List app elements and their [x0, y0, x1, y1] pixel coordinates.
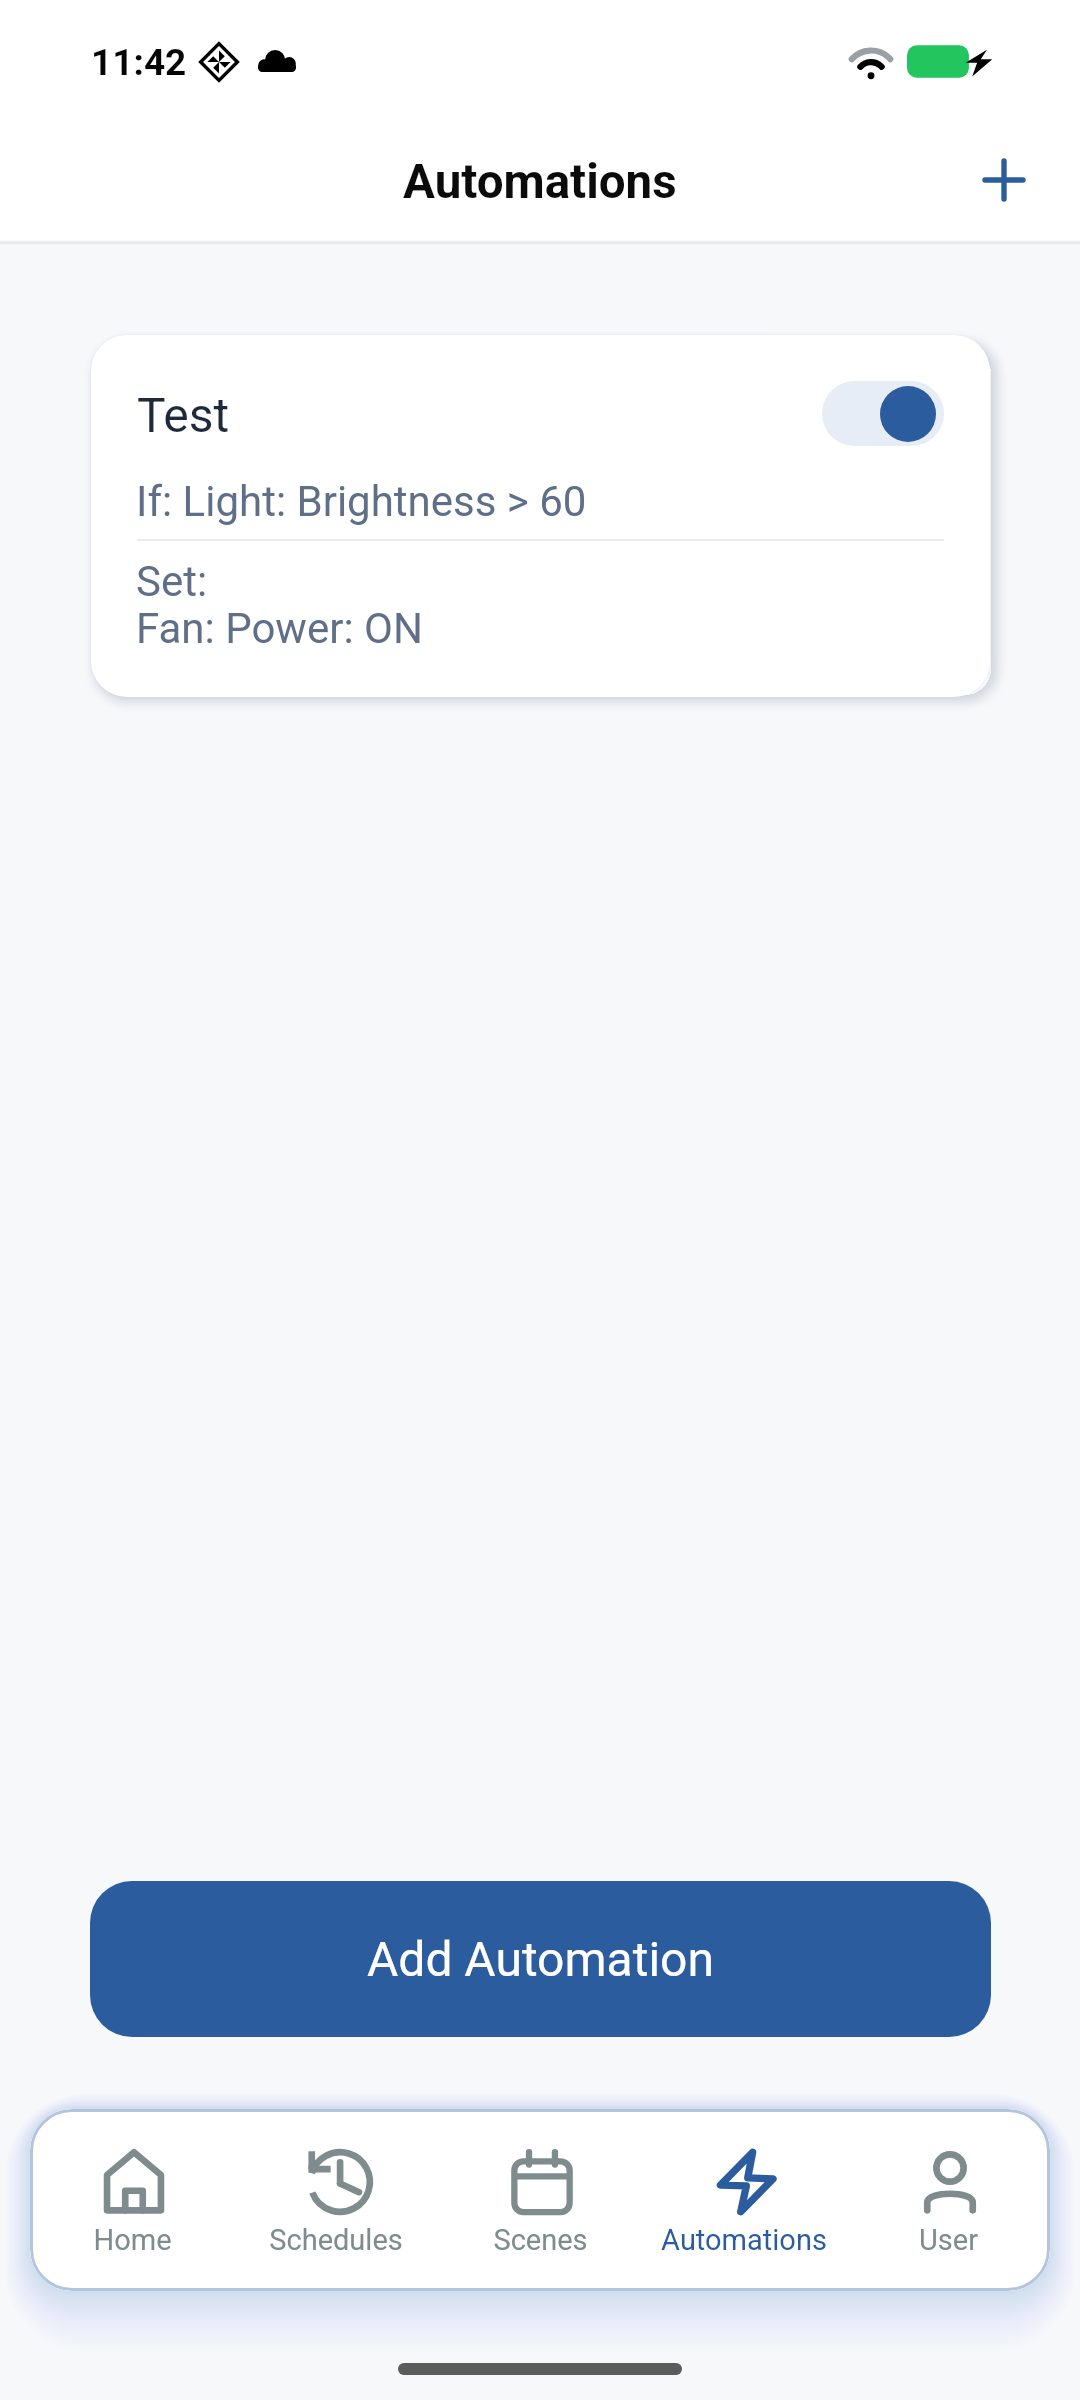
- staticText: Scenes: [493, 2223, 588, 2257]
- staticText: Test: [137, 387, 230, 443]
- button[interactable]: Home: [30, 2109, 234, 2291]
- button[interactable]: Schedules: [234, 2109, 438, 2291]
- staticText: User: [919, 2223, 978, 2257]
- button[interactable]: Toggle automation: [822, 381, 944, 446]
- staticText: Automations: [661, 2223, 827, 2257]
- button[interactable]: Add Automation: [90, 1881, 991, 2037]
- button[interactable]: Add automation: [956, 132, 1052, 228]
- button[interactable]: Automations: [642, 2109, 846, 2291]
- staticText: Automations: [403, 154, 677, 210]
- staticText: Set: Fan: Power: ON: [136, 557, 423, 653]
- button[interactable]: Scenes: [438, 2109, 642, 2291]
- button[interactable]: User: [846, 2109, 1050, 2291]
- staticText: Add Automation: [367, 1931, 714, 1987]
- button[interactable]: Test: [91, 335, 990, 697]
- staticText: Schedules: [269, 2223, 403, 2257]
- staticText: If: Light: Brightness > 60: [136, 477, 587, 526]
- staticText: Home: [93, 2223, 172, 2257]
- staticText: 11:42: [91, 41, 187, 84]
